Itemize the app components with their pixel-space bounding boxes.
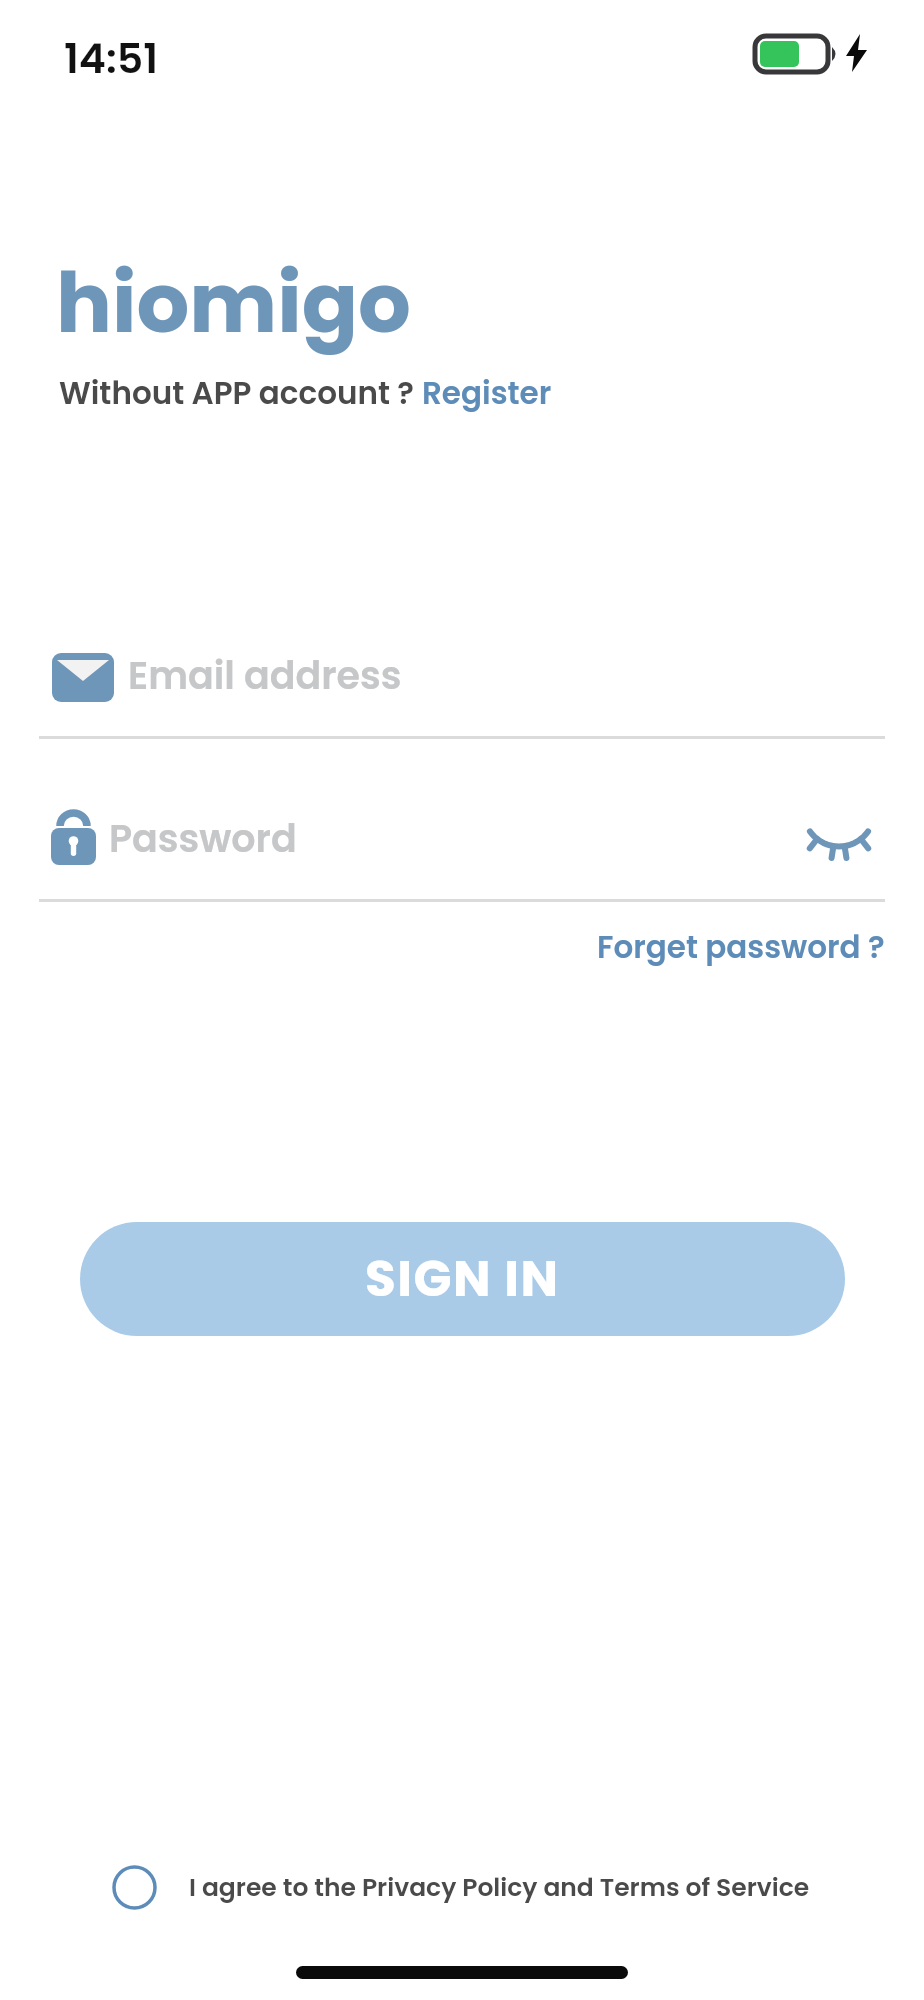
staticText: Password: [109, 812, 297, 865]
staticText: SIGN IN: [365, 1244, 560, 1314]
staticText: hiomigo: [56, 245, 411, 361]
button[interactable]: [806, 822, 872, 858]
staticText: I agree to the Privacy Policy and Terms …: [189, 1870, 810, 1905]
staticText: Email address: [128, 649, 402, 702]
button[interactable]: Register: [422, 371, 552, 414]
staticText: Without APP account ?: [59, 371, 422, 414]
staticText: 14:51: [64, 30, 158, 87]
button[interactable]: Forget password ?: [597, 925, 885, 968]
button[interactable]: I agree to the Privacy Policy and Terms …: [112, 1862, 810, 1912]
button[interactable]: SIGN IN: [80, 1222, 845, 1336]
staticText: Forget password ?: [597, 925, 885, 968]
